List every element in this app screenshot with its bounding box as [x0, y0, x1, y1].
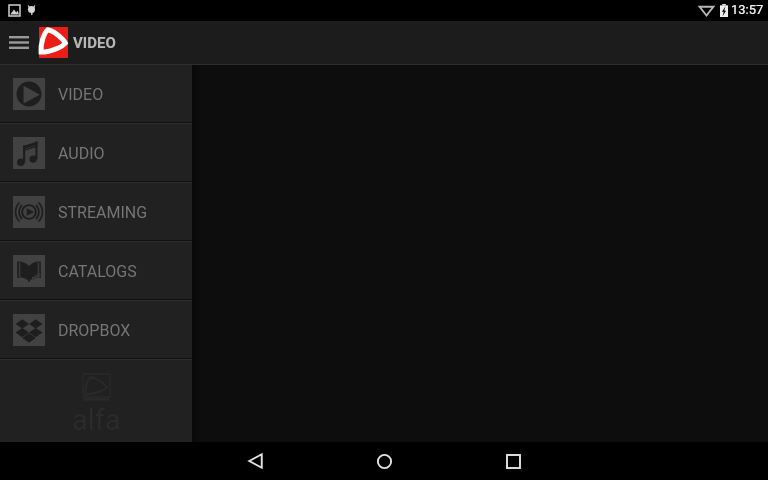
staticText: STREAMING [58, 203, 148, 222]
staticText: VIDEO [58, 85, 104, 104]
button[interactable]: DROPBOX [0, 301, 192, 358]
button[interactable]: STREAMING [0, 183, 192, 240]
button[interactable]: AUDIO [0, 124, 192, 181]
button[interactable]: Back [225, 442, 285, 480]
staticText: CATALOGS [58, 262, 137, 281]
staticText: alfa [72, 403, 121, 437]
staticText: 13:57 [731, 2, 764, 17]
button[interactable]: Home [354, 442, 414, 480]
button[interactable]: Recent apps [483, 442, 543, 480]
staticText: DROPBOX [58, 321, 131, 340]
staticText: VIDEO [73, 34, 116, 52]
button[interactable]: VIDEO [0, 65, 192, 122]
staticText: P L A Y E R [82, 438, 112, 445]
button[interactable]: Open navigation drawer [0, 21, 38, 64]
button[interactable]: CATALOGS [0, 242, 192, 299]
staticText: AUDIO [58, 144, 105, 163]
